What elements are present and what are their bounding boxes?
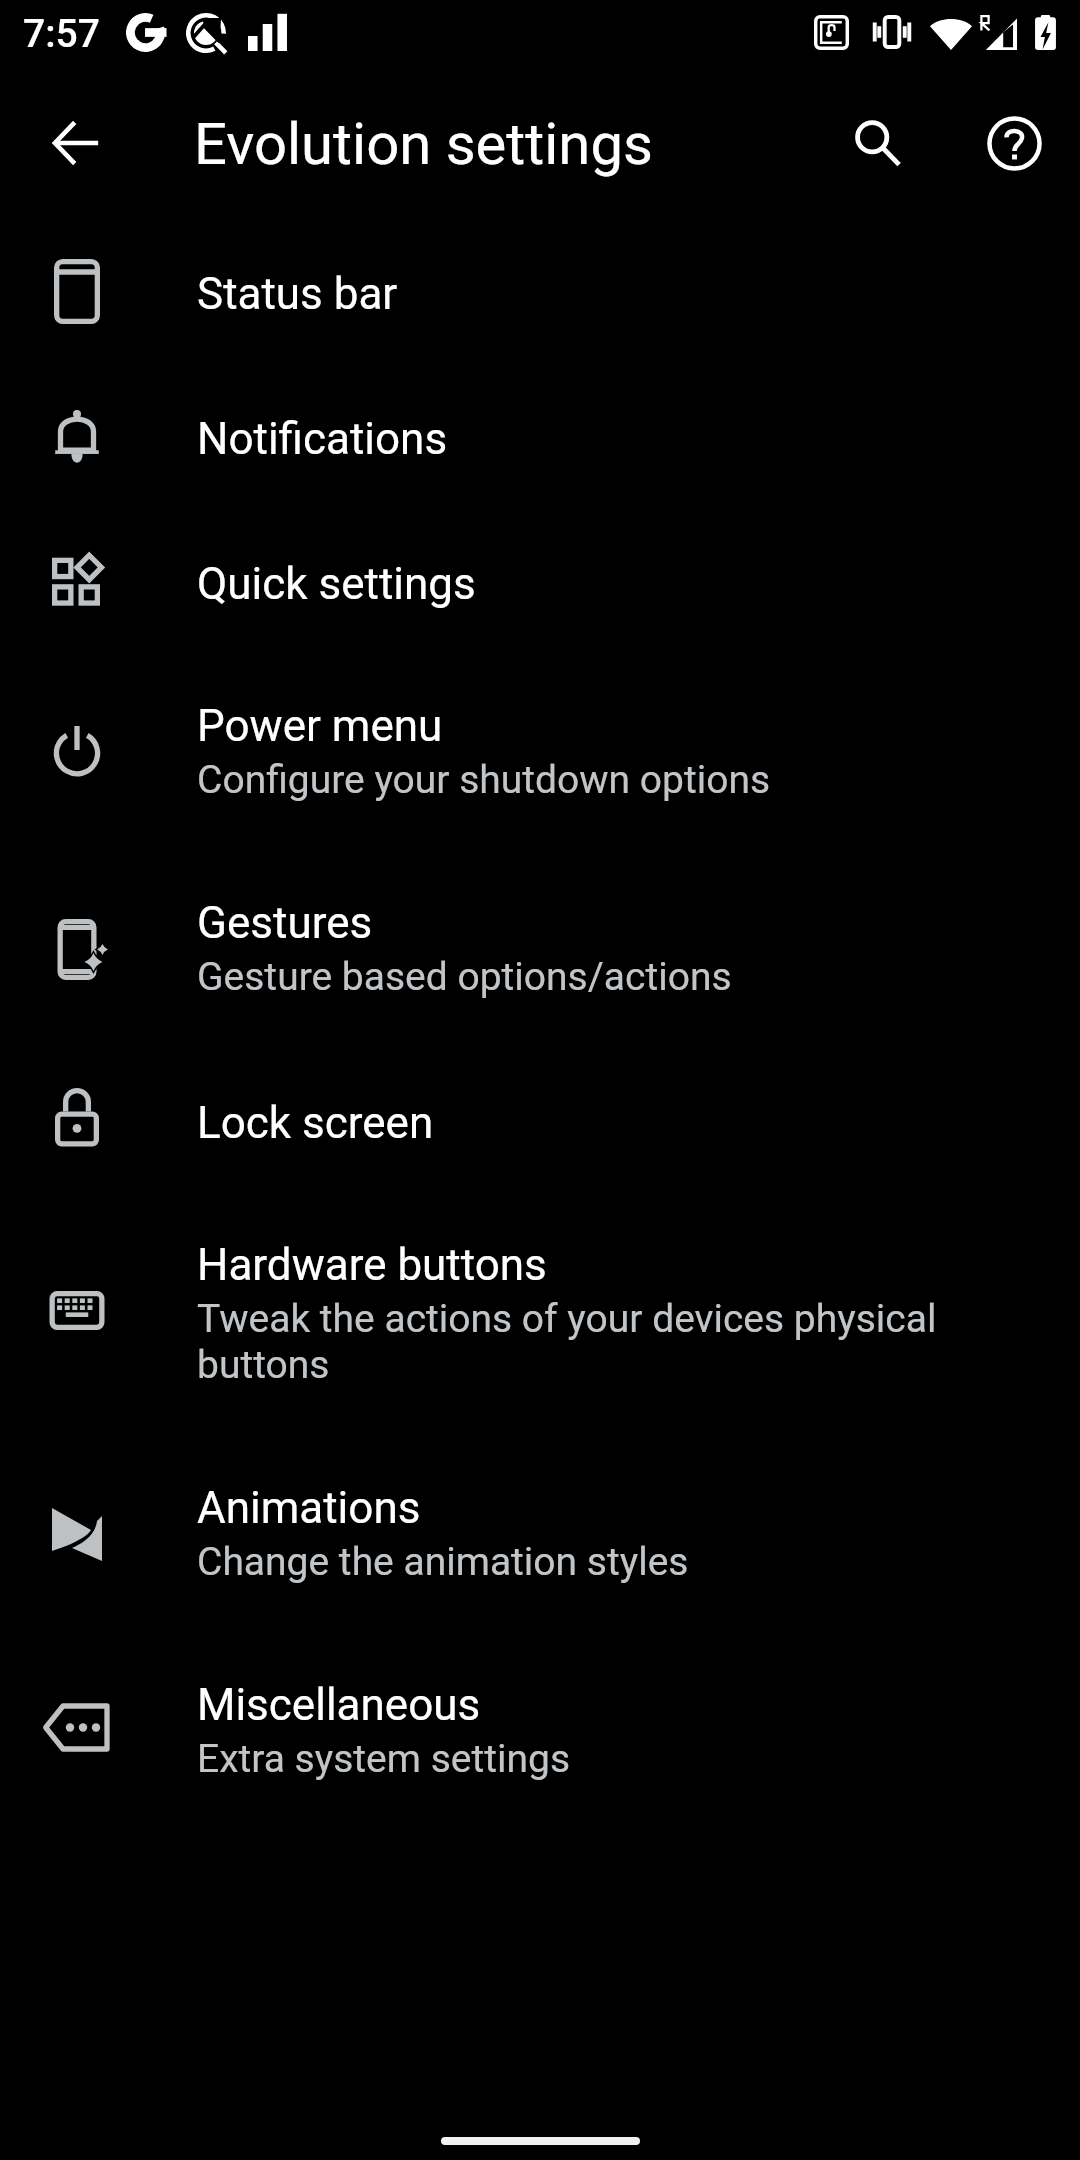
button[interactable]: Miscellaneous: [0, 1635, 1080, 1832]
button[interactable]: Status bar: [0, 221, 1080, 366]
staticText: Status bar: [197, 267, 398, 320]
button[interactable]: Back: [29, 95, 125, 191]
staticText: Change the animation styles: [197, 1539, 689, 1585]
button[interactable]: Lock screen: [0, 1050, 1080, 1195]
button[interactable]: Help: [966, 95, 1062, 191]
staticText: Power menu: [197, 699, 443, 752]
staticText: Tweak the actions of your devices physic…: [197, 1296, 997, 1388]
staticText: Lock screen: [197, 1096, 434, 1149]
button[interactable]: Hardware buttons: [0, 1195, 1080, 1438]
button[interactable]: Power menu: [0, 656, 1080, 853]
button[interactable]: Quick settings: [0, 511, 1080, 656]
staticText: Quick settings: [197, 557, 476, 610]
staticText: Notifications: [197, 412, 448, 465]
staticText: Extra system settings: [197, 1736, 571, 1782]
button[interactable]: Notifications: [0, 366, 1080, 511]
staticText: Miscellaneous: [197, 1678, 481, 1731]
staticText: Hardware buttons: [197, 1238, 547, 1291]
staticText: Animations: [197, 1481, 421, 1534]
staticText: Configure your shutdown options: [197, 757, 771, 803]
button[interactable]: Gestures: [0, 853, 1080, 1050]
staticText: Gesture based options/actions: [197, 954, 732, 1000]
staticText: Gestures: [197, 896, 373, 949]
button[interactable]: Search: [829, 95, 925, 191]
button[interactable]: Animations: [0, 1438, 1080, 1635]
staticText: 7:57: [23, 11, 100, 57]
staticText: Evolution settings: [194, 110, 653, 178]
